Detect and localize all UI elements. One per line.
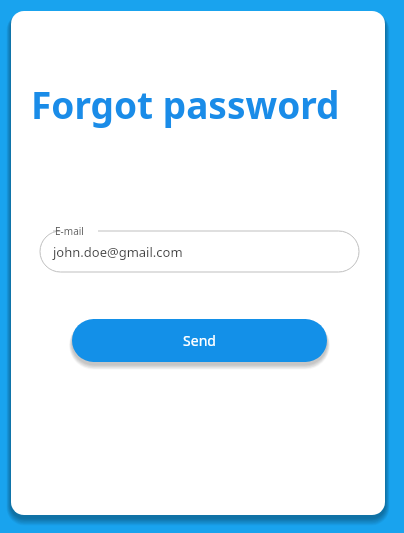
button[interactable]: E-mail bbox=[40, 225, 359, 272]
staticText: E-mail bbox=[55, 224, 84, 238]
staticText: Forgot password bbox=[31, 79, 340, 129]
staticText: Send bbox=[183, 331, 216, 350]
button[interactable]: Send bbox=[72, 319, 327, 362]
staticText: john.doe@gmail.com bbox=[53, 243, 183, 261]
